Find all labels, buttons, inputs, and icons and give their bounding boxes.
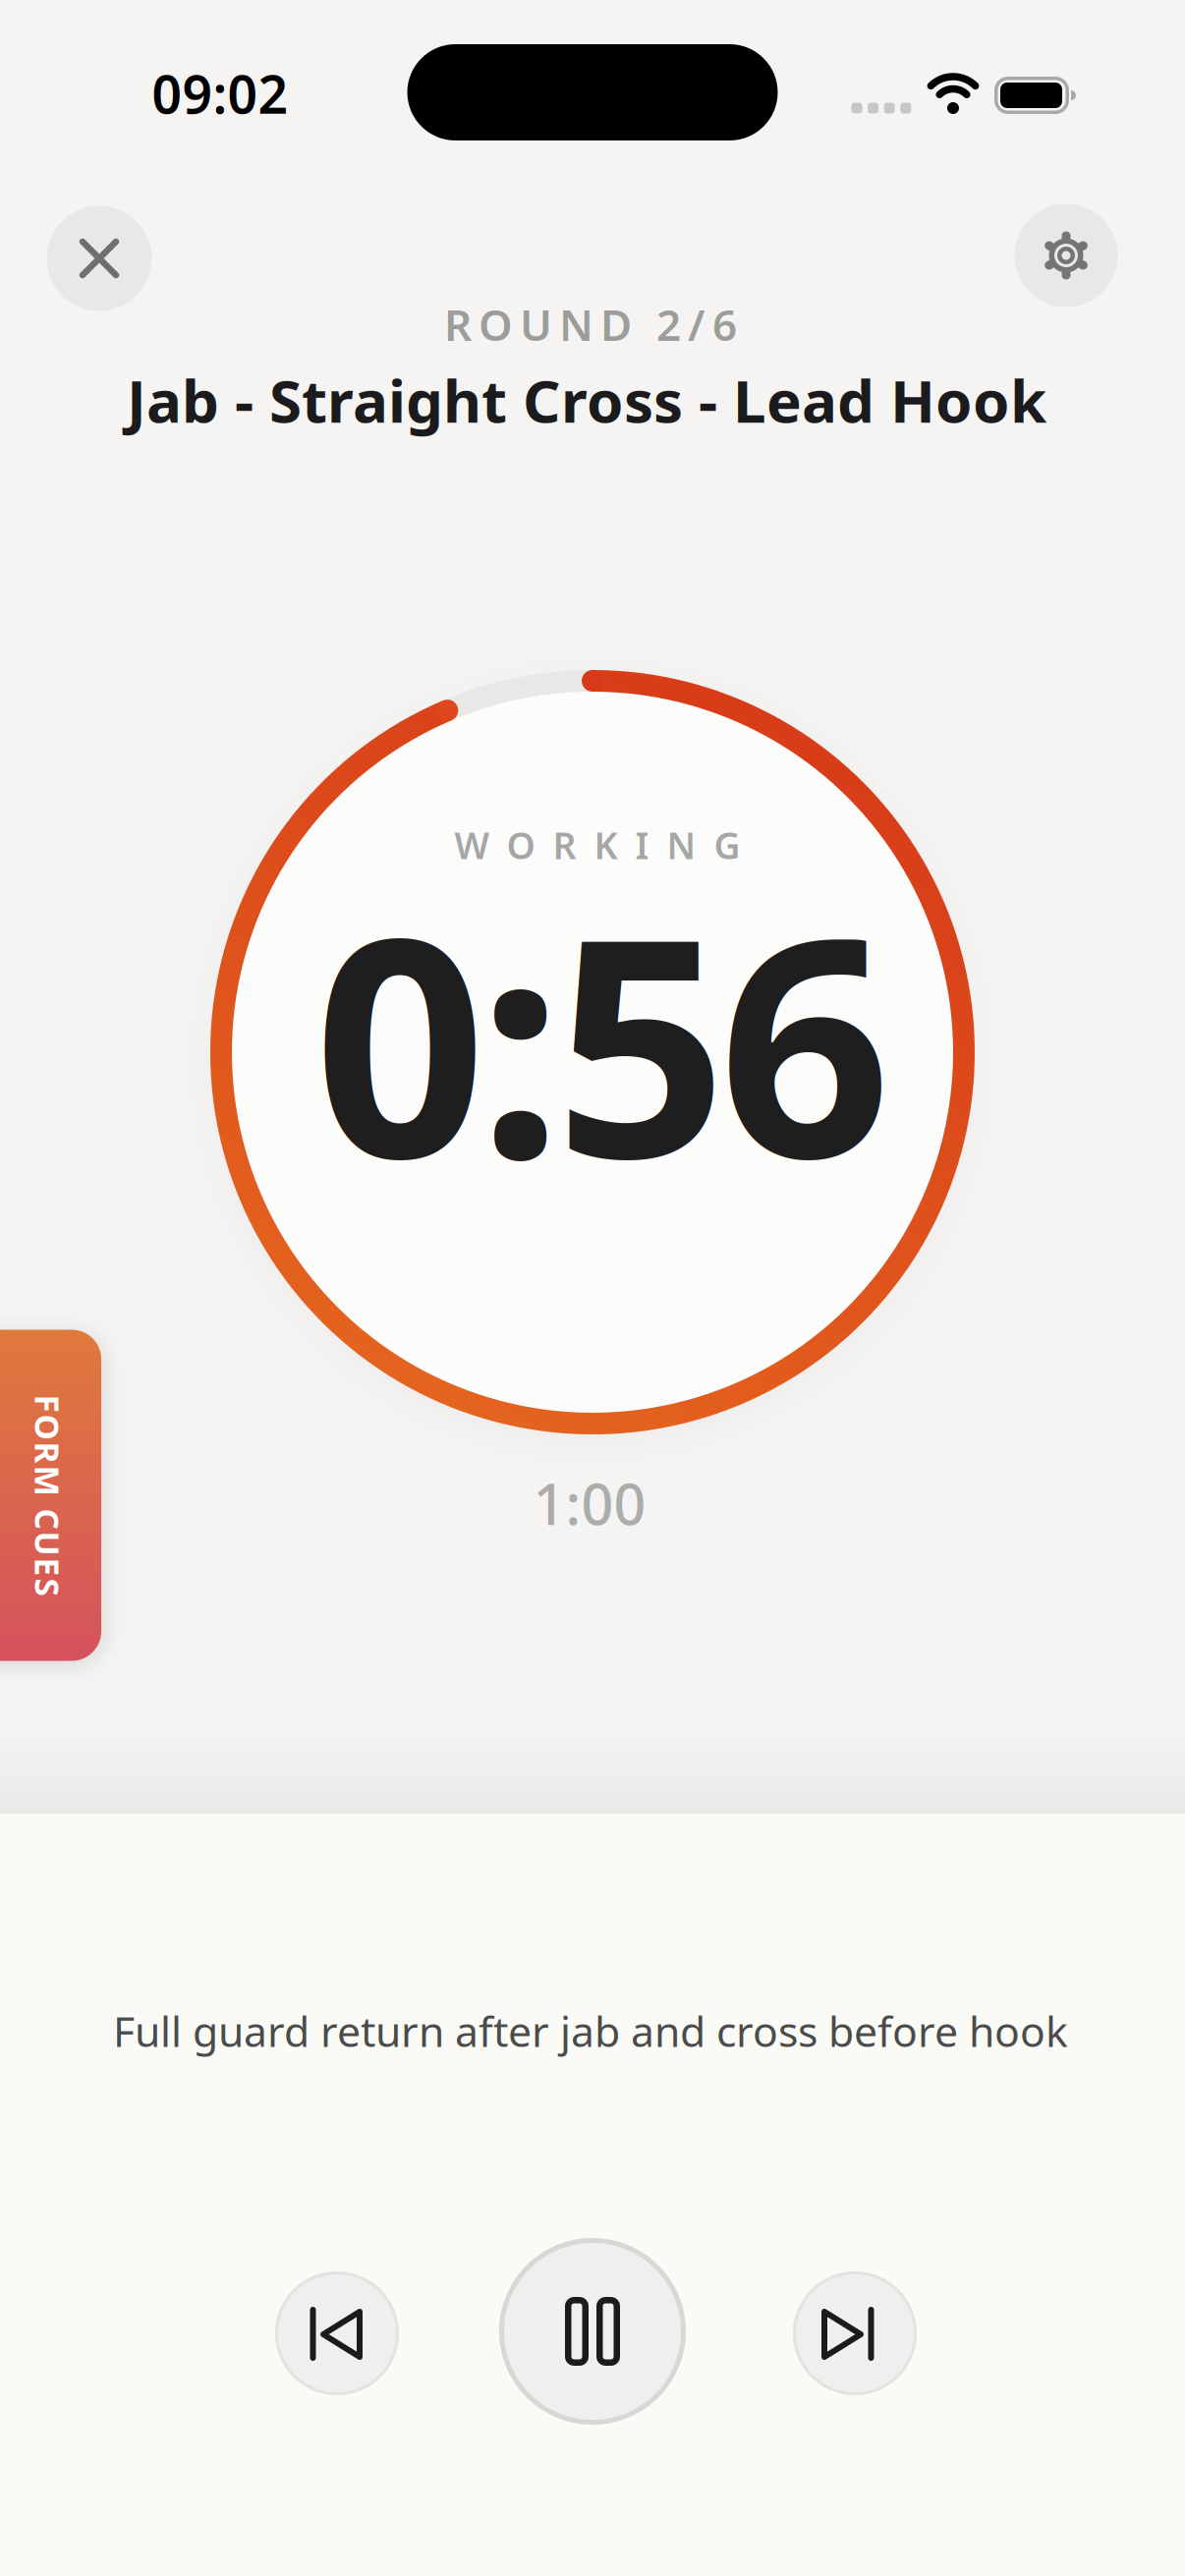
button[interactable]: Close	[47, 206, 152, 311]
staticText: ROUND 2/6	[444, 296, 737, 353]
staticText: Jab - Straight Cross - Lead Hook	[127, 361, 1046, 439]
button[interactable]: FORM CUES	[0, 1330, 101, 1661]
staticText: FORM CUES	[0, 1474, 148, 1517]
staticText: WORKING	[454, 821, 740, 869]
button[interactable]: Settings	[1015, 204, 1118, 307]
button[interactable]: Previous round	[275, 2271, 399, 2395]
staticText: 1:00	[533, 1466, 646, 1540]
button[interactable]: Next round	[793, 2271, 917, 2395]
button[interactable]: Pause	[499, 2238, 686, 2425]
staticText: 09:02	[152, 59, 288, 128]
staticText: Full guard return after jab and cross be…	[113, 2003, 1068, 2059]
staticText: 0:56	[314, 840, 891, 1240]
